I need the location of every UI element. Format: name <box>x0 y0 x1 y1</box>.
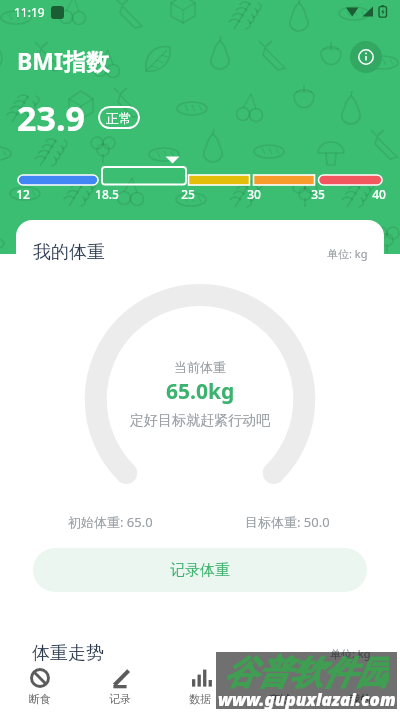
staticText: www.gupuxlazai.com <box>218 688 396 709</box>
staticText: 40 <box>372 186 386 202</box>
staticText: 定好目标就赶紧行动吧 <box>130 412 270 430</box>
staticText: 单位: kg <box>330 646 371 661</box>
staticText: 谷普软件园 <box>224 652 389 689</box>
button[interactable]: 记录 <box>80 662 160 712</box>
button[interactable]: Info <box>350 41 382 73</box>
staticText: 18.5 <box>95 186 119 202</box>
staticText: 记录 <box>109 692 131 706</box>
staticText: BMI指数 <box>17 45 109 76</box>
staticText: 11:19 <box>14 4 45 20</box>
button[interactable]: 数据 <box>160 662 240 712</box>
staticText: 12 <box>16 186 30 202</box>
staticText: 我的 <box>349 692 371 706</box>
staticText: 数据 <box>189 692 211 706</box>
staticText: 23.9 <box>17 95 85 141</box>
staticText: 30 <box>247 186 261 202</box>
staticText: 体重走势 <box>32 642 104 665</box>
staticText: 正常 <box>106 110 132 126</box>
button[interactable]: 断食 <box>0 662 80 712</box>
button[interactable]: 记录体重 <box>33 548 367 592</box>
staticText: 单位: kg <box>327 246 368 261</box>
button[interactable]: 正常 <box>98 106 140 129</box>
button[interactable]: 商城 <box>240 662 320 712</box>
staticText: 商城 <box>269 692 291 706</box>
staticText: 65.0kg <box>166 377 235 406</box>
staticText: 我的体重 <box>33 241 105 264</box>
staticText: 当前体重 <box>174 359 226 375</box>
staticText: 目标体重: 50.0 <box>245 513 330 531</box>
staticText: 35 <box>311 186 325 202</box>
staticText: 记录体重 <box>170 561 230 580</box>
staticText: 初始体重: 65.0 <box>68 513 153 531</box>
staticText: 25 <box>181 186 195 202</box>
button[interactable]: 我的 <box>320 662 400 712</box>
staticText: 断食 <box>29 692 51 706</box>
